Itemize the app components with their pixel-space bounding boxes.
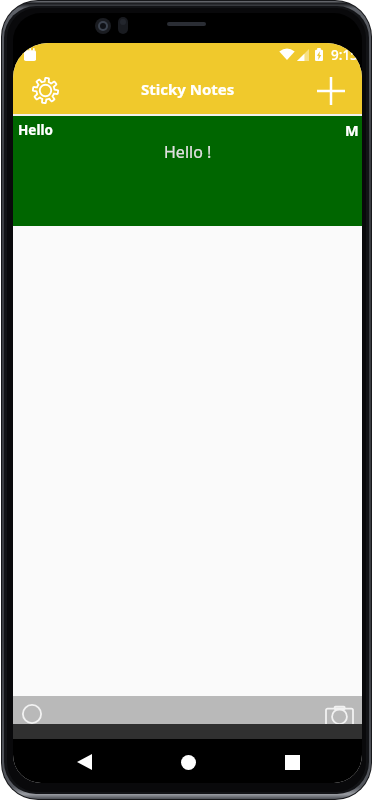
button[interactable]: Assistant: [18, 701, 46, 724]
staticText: Hello: [18, 121, 53, 139]
button[interactable]: Camera: [326, 702, 356, 724]
button[interactable]: Settings: [28, 73, 62, 107]
button[interactable]: Home: [171, 745, 205, 779]
staticText: Hello !: [164, 141, 212, 163]
staticText: M: [345, 120, 359, 140]
button[interactable]: Add note: [313, 73, 349, 109]
button[interactable]: Back: [67, 745, 101, 779]
staticText: 9:15: [331, 46, 358, 64]
button[interactable]: Hello: [13, 116, 362, 226]
button[interactable]: Recents: [275, 745, 309, 779]
staticText: Sticky Notes: [141, 79, 235, 99]
